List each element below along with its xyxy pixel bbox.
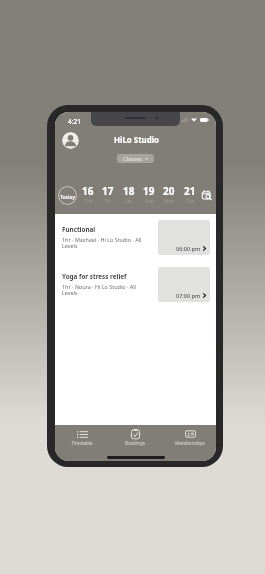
staticText: 1hr · Noura · Hi Lo Studio · All Levels <box>62 283 148 297</box>
staticText: 20 <box>163 184 175 198</box>
staticText: 07:00 pm <box>176 292 201 299</box>
button[interactable]: 18 <box>119 184 139 205</box>
staticText: 19 <box>143 184 155 198</box>
button[interactable]: 19 <box>139 184 159 205</box>
staticText: Bookings <box>125 440 145 446</box>
staticText: Mon <box>164 198 175 205</box>
staticText: Timetable <box>71 440 93 446</box>
button[interactable]: Bookings <box>112 429 158 446</box>
button[interactable]: 21 <box>180 184 200 205</box>
button[interactable]: Today <box>58 186 77 205</box>
staticText: Tue <box>186 198 195 205</box>
button[interactable]: Search calendar <box>202 190 212 200</box>
staticText: Memberships <box>175 440 205 446</box>
button[interactable]: Profile <box>62 132 79 149</box>
staticText: HiLo Studio <box>114 135 159 146</box>
staticText: Sun <box>145 198 154 205</box>
button[interactable]: Timetable <box>59 429 105 446</box>
staticText: Classes <box>123 155 142 162</box>
staticText: 21 <box>184 184 196 198</box>
staticText: 17 <box>102 184 114 198</box>
button[interactable]: Memberships <box>167 429 213 446</box>
staticText: Sat <box>125 198 133 205</box>
staticText: 4:21 <box>68 117 82 126</box>
button[interactable]: 06:00 pm <box>158 220 210 255</box>
staticText: 1hr · Mashael · Hi Lo Studio · All Level… <box>62 236 148 250</box>
button[interactable]: Yoga for stress relief <box>55 267 216 302</box>
staticText: Functional <box>62 225 96 234</box>
button[interactable]: 20 <box>159 184 179 205</box>
staticText: Yoga for stress relief <box>62 272 127 281</box>
staticText: Today <box>60 193 75 200</box>
staticText: 16 <box>82 184 94 198</box>
button[interactable]: 07:00 pm <box>158 267 210 302</box>
button[interactable]: Functional <box>55 220 216 255</box>
staticText: Thu <box>84 198 93 205</box>
staticText: 06:00 pm <box>176 245 201 252</box>
button[interactable]: Classes <box>117 154 154 163</box>
button[interactable]: 17 <box>98 184 118 205</box>
staticText: Fri <box>105 198 111 205</box>
button[interactable]: 16 <box>78 184 98 205</box>
staticText: 18 <box>123 184 135 198</box>
